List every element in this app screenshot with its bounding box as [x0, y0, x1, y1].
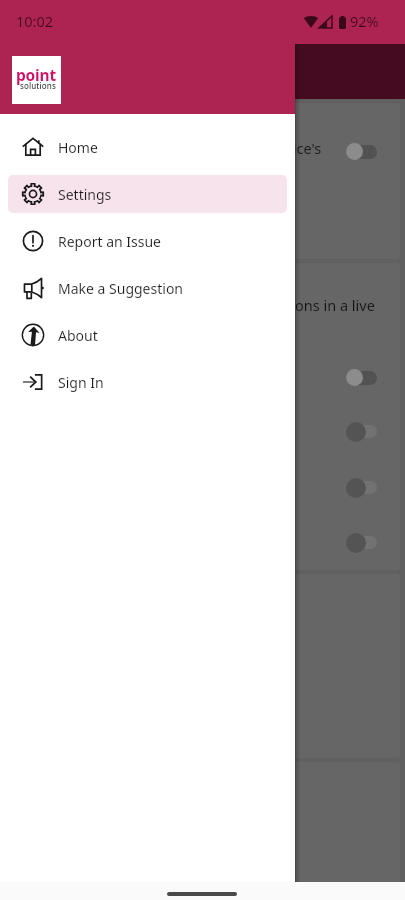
staticText: point	[16, 64, 56, 85]
button[interactable]: Home	[8, 128, 287, 166]
staticText: Report an Issue	[58, 232, 162, 251]
button[interactable]: About	[8, 316, 287, 354]
button[interactable]: Make a Suggestion	[8, 269, 287, 307]
staticText: Home	[58, 138, 98, 157]
button[interactable]: Sign In	[8, 363, 287, 401]
staticText: Make a Suggestion	[58, 279, 184, 298]
staticText: 92%	[350, 11, 379, 31]
staticText: About	[58, 326, 98, 345]
staticText: Use the device's	[213, 138, 393, 158]
button[interactable]: Settings	[8, 175, 287, 213]
button[interactable]: Report an Issue	[8, 222, 287, 260]
staticText: questions in a live	[253, 295, 400, 315]
staticText: 10:02	[16, 11, 54, 31]
staticText: Sign In	[58, 373, 104, 392]
staticText: Settings	[58, 185, 112, 204]
staticText: solutions	[20, 80, 56, 91]
